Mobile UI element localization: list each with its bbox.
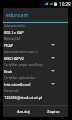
staticText: Metoda EAP: [4, 37, 21, 41]
staticText: PEAP: [4, 43, 14, 48]
staticText: Certyfikat użytkownika: [4, 76, 35, 80]
button[interactable]: Certyfikat urzędu certyfikacji: [3, 62, 68, 75]
staticText: eduroam: [6, 11, 29, 18]
staticText: Brak: [4, 69, 13, 74]
staticText: Zapisz: [47, 109, 60, 115]
staticText: Tożsamość: [4, 89, 19, 93]
staticText: 802.1x EAP: [4, 30, 24, 35]
staticText: (nie określono): [4, 82, 31, 87]
staticText: MSCHAPV2: [4, 56, 24, 61]
button[interactable]: Anuluj: [9, 106, 38, 117]
button[interactable]: Zabezpieczenia: [3, 23, 68, 36]
staticText: 123456@stud.ut.ut.pl: [4, 95, 43, 100]
button[interactable]: Zapisz: [38, 106, 68, 117]
staticText: Anuluj: [17, 109, 30, 115]
button[interactable]: Certyfikat użytkownika: [3, 75, 68, 88]
staticText: Uwierzytelnianie etapu 2: [4, 50, 38, 54]
staticText: 10:29: [59, 1, 71, 7]
button[interactable]: Metoda EAP: [3, 36, 68, 49]
staticText: Certyfikat urzędu certyfikacji: [4, 63, 43, 67]
button[interactable]: Uwierzytelnianie etapu 2: [3, 49, 68, 62]
staticText: Zabezpieczenia: [4, 24, 25, 28]
button[interactable]: Tożsamość: [3, 88, 68, 101]
